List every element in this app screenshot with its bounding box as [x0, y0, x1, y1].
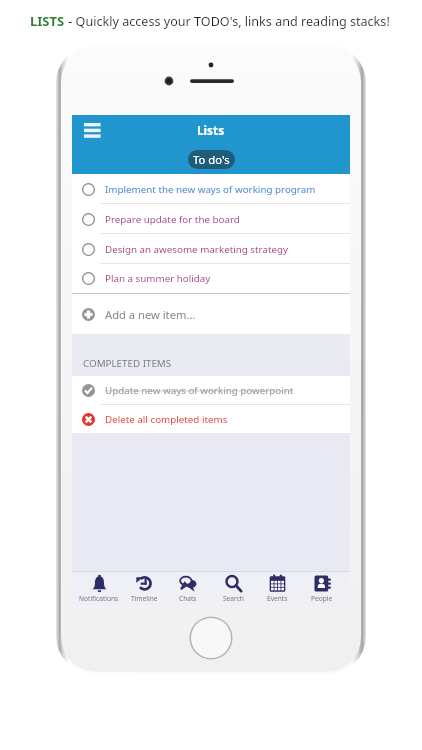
button[interactable]: Chats — [166, 572, 210, 605]
staticText: Implement the new ways of working progra… — [105, 183, 316, 196]
staticText: LISTS — [30, 12, 65, 30]
staticText: People — [311, 594, 333, 603]
staticText: Lists — [197, 122, 225, 138]
button[interactable]: Implement the new ways of working progra… — [72, 174, 350, 204]
staticText: Design an awesome marketing strategy — [105, 243, 289, 256]
button[interactable]: People — [300, 572, 344, 605]
staticText: Chats — [179, 594, 197, 603]
button[interactable]: Update new ways of working powerpoint — [72, 376, 350, 405]
staticText: Delete all completed items — [105, 413, 228, 426]
button[interactable]: Search — [211, 572, 255, 605]
staticText: To do's — [193, 152, 230, 167]
staticText: Update new ways of working powerpoint — [105, 384, 294, 397]
staticText: Add a new item... — [105, 307, 196, 322]
staticText: Timeline — [131, 594, 158, 603]
button[interactable]: Notifications — [77, 572, 121, 605]
staticText: Search — [223, 594, 244, 603]
staticText: Events — [267, 594, 288, 603]
button[interactable]: Timeline — [122, 572, 166, 605]
staticText: COMPLETED ITEMS — [83, 357, 172, 370]
staticText: Notifications — [79, 594, 119, 603]
button[interactable]: Design an awesome marketing strategy — [72, 234, 350, 264]
button[interactable]: Plan a summer holiday — [72, 264, 350, 293]
button[interactable]: Menu — [80, 119, 102, 141]
staticText: Prepare update for the board — [105, 213, 240, 226]
button[interactable]: Delete all completed items — [72, 405, 350, 433]
button[interactable]: Add a new item... — [72, 294, 350, 334]
button[interactable]: To do's — [188, 150, 235, 169]
button[interactable]: Events — [255, 572, 299, 605]
button[interactable]: Prepare update for the board — [72, 204, 350, 234]
staticText: Plan a summer holiday — [105, 272, 211, 285]
staticText: - Quickly access your TODO's, links and … — [65, 13, 390, 30]
